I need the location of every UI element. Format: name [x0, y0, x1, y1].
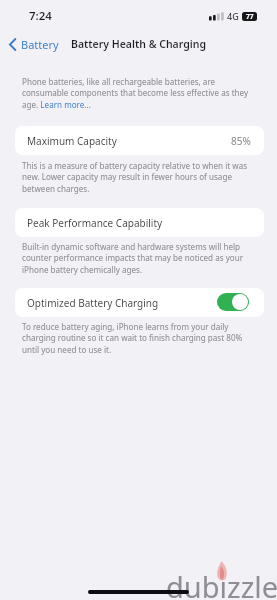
- staticText: dubizzle: [166, 567, 277, 600]
- staticText: 77: [246, 12, 254, 21]
- staticText: Battery: [21, 37, 59, 52]
- button[interactable]: Maximum Capacity: [15, 126, 264, 155]
- staticText: This is a measure of battery capacity re…: [22, 160, 256, 195]
- staticText: 85%: [231, 134, 251, 148]
- button[interactable]: Battery: [6, 35, 59, 54]
- staticText: Maximum Capacity: [27, 134, 117, 148]
- staticText: Built-in dynamic software and hardware s…: [22, 241, 256, 276]
- button[interactable]: Optimized Battery Charging: [15, 288, 264, 317]
- staticText: Phone batteries, like all rechargeable b…: [22, 76, 256, 111]
- button[interactable]: Optimized Battery Charging toggle: [217, 293, 249, 311]
- staticText: 4G: [227, 10, 239, 22]
- staticText: Peak Performance Capability: [27, 216, 163, 230]
- button[interactable]: Peak Performance Capability: [15, 208, 264, 237]
- staticText: To reduce battery aging, iPhone learns f…: [22, 321, 256, 356]
- staticText: Battery Health & Charging: [71, 37, 206, 51]
- staticText: Optimized Battery Charging: [27, 296, 159, 310]
- staticText: 7:24: [29, 8, 52, 24]
